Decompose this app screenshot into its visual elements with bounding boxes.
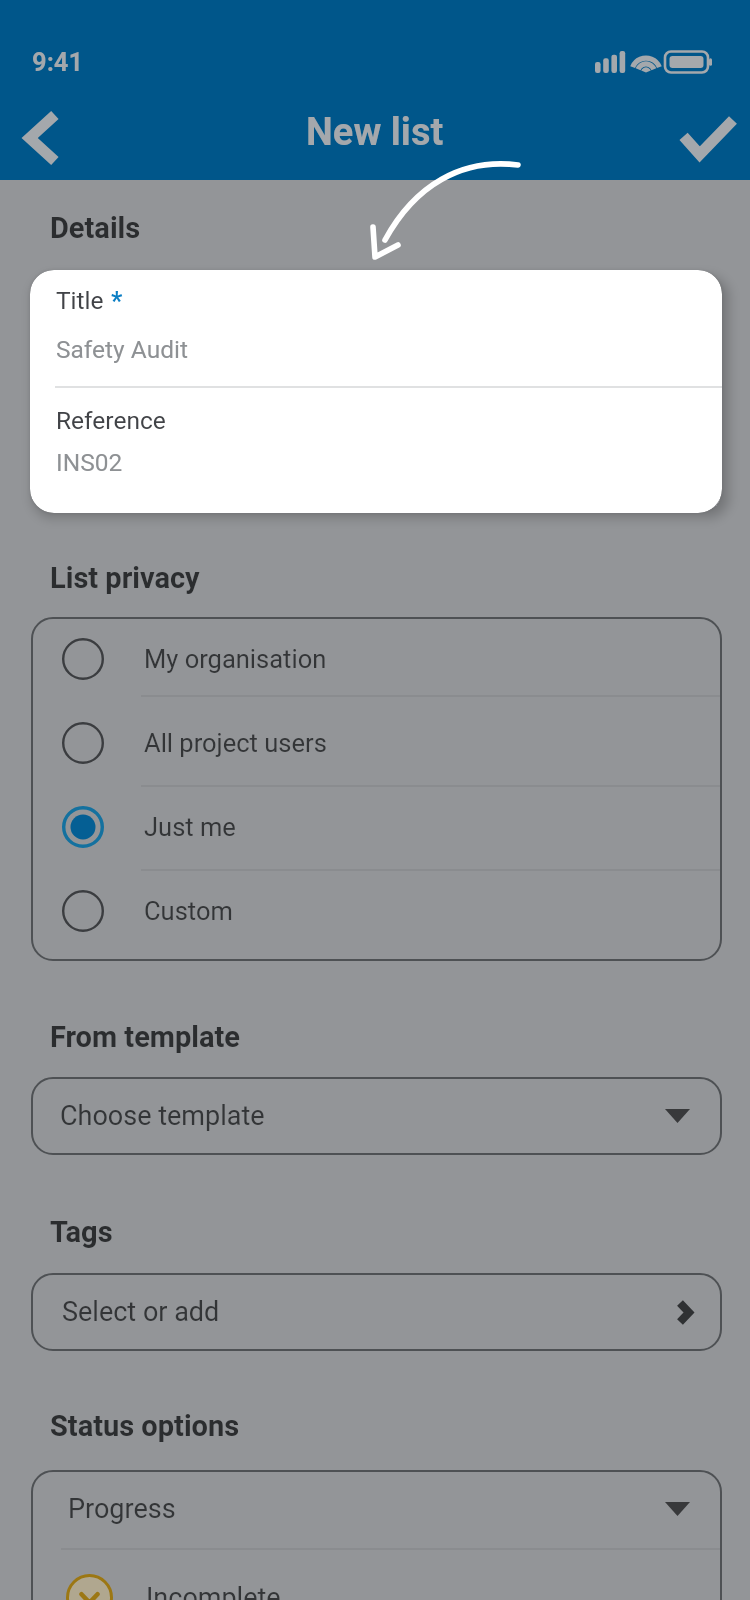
button[interactable]: Back [0, 96, 84, 180]
button[interactable]: All project users [31, 701, 722, 785]
staticText: Progress [68, 1493, 176, 1525]
staticText: Reference [56, 406, 166, 435]
staticText: New list [306, 110, 444, 155]
button[interactable]: Custom [31, 869, 722, 953]
staticText: Tags [50, 1215, 113, 1249]
button[interactable]: Incomplete [31, 1550, 722, 1600]
staticText: From template [50, 1020, 240, 1054]
staticText: Just me [144, 812, 236, 842]
staticText: Custom [144, 896, 233, 926]
button[interactable]: Just me [31, 785, 722, 869]
button[interactable]: Select or add [31, 1273, 722, 1351]
button[interactable]: My organisation [31, 617, 722, 701]
staticText: Details [50, 211, 141, 245]
staticText: My organisation [144, 644, 327, 674]
staticText: Select or add [62, 1296, 220, 1328]
staticText: Choose template [60, 1100, 265, 1132]
button[interactable]: Reference [30, 388, 722, 513]
staticText: Status options [50, 1409, 240, 1443]
button[interactable]: Progress [31, 1470, 722, 1548]
staticText: Title [56, 286, 104, 315]
staticText: * [111, 287, 123, 316]
button[interactable]: Choose template [31, 1077, 722, 1155]
staticText: 9:41 [32, 47, 84, 77]
staticText: List privacy [50, 561, 200, 595]
staticText: All project users [144, 728, 327, 758]
staticText: Safety Audit [56, 335, 188, 364]
button[interactable]: Title [30, 270, 722, 386]
staticText: Incomplete [146, 1582, 281, 1600]
staticText: INS02 [56, 448, 123, 477]
button[interactable]: Save [666, 96, 750, 180]
